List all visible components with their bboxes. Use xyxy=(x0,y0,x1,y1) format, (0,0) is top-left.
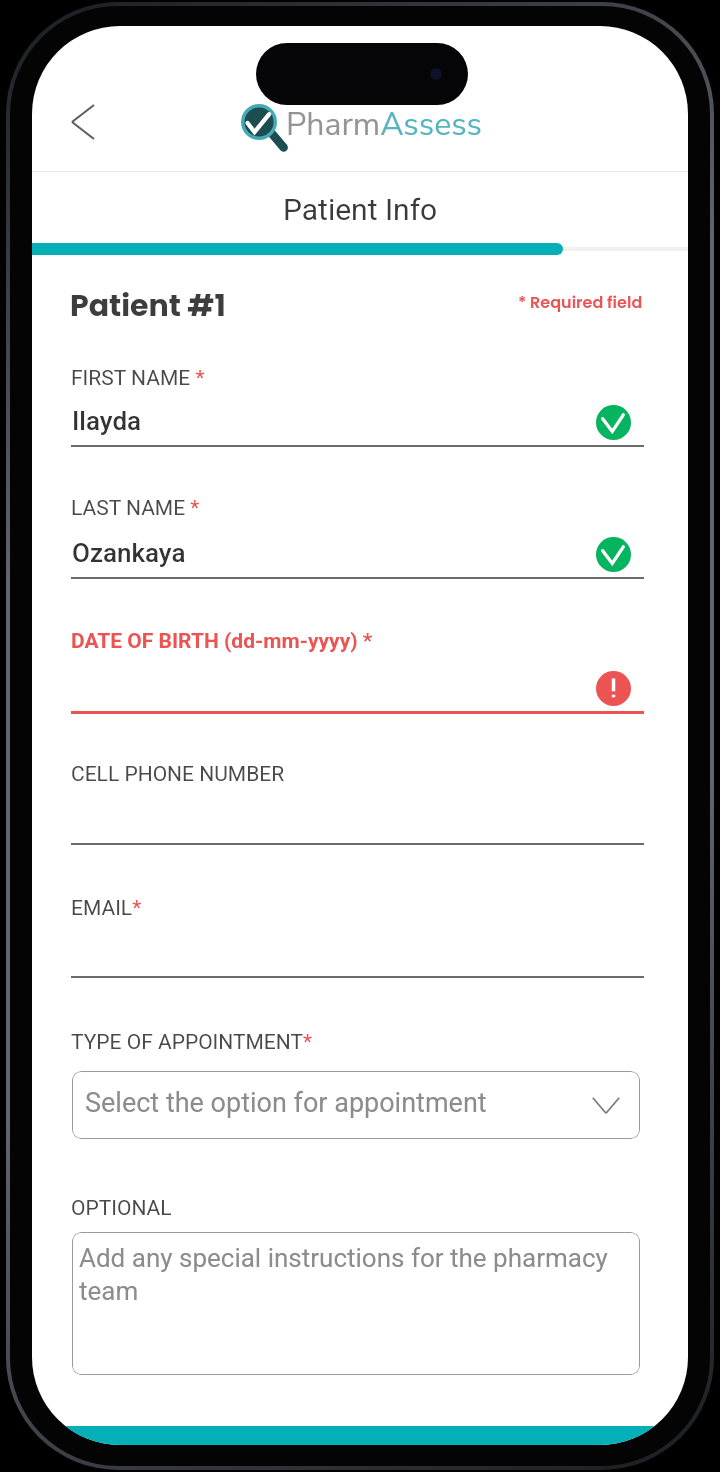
staticText: PharmAssess xyxy=(286,103,482,147)
staticText: TYPE OF APPOINTMENT* xyxy=(71,1030,313,1055)
staticText: CELL PHONE NUMBER xyxy=(71,762,285,787)
staticText: Ilayda xyxy=(72,406,142,436)
staticText: LAST NAME * xyxy=(71,496,200,521)
staticText: Patient Info xyxy=(283,192,438,227)
staticText: EMAIL* xyxy=(71,896,142,921)
button[interactable]: Back xyxy=(56,95,108,149)
staticText: Ozankaya xyxy=(72,538,186,568)
button[interactable]: Select the option for appointment xyxy=(72,1071,640,1139)
staticText: Select the option for appointment xyxy=(85,1087,487,1119)
staticText: DATE OF BIRTH (dd-mm-yyyy) * xyxy=(71,629,373,654)
staticText: Patient #1 xyxy=(70,285,226,327)
staticText: * Required field xyxy=(518,291,643,313)
staticText: OPTIONAL xyxy=(71,1196,172,1221)
button[interactable]: Add any special instructions for the pha… xyxy=(72,1232,640,1375)
staticText: Add any special instructions for the pha… xyxy=(79,1243,634,1306)
staticText: FIRST NAME * xyxy=(71,366,205,391)
